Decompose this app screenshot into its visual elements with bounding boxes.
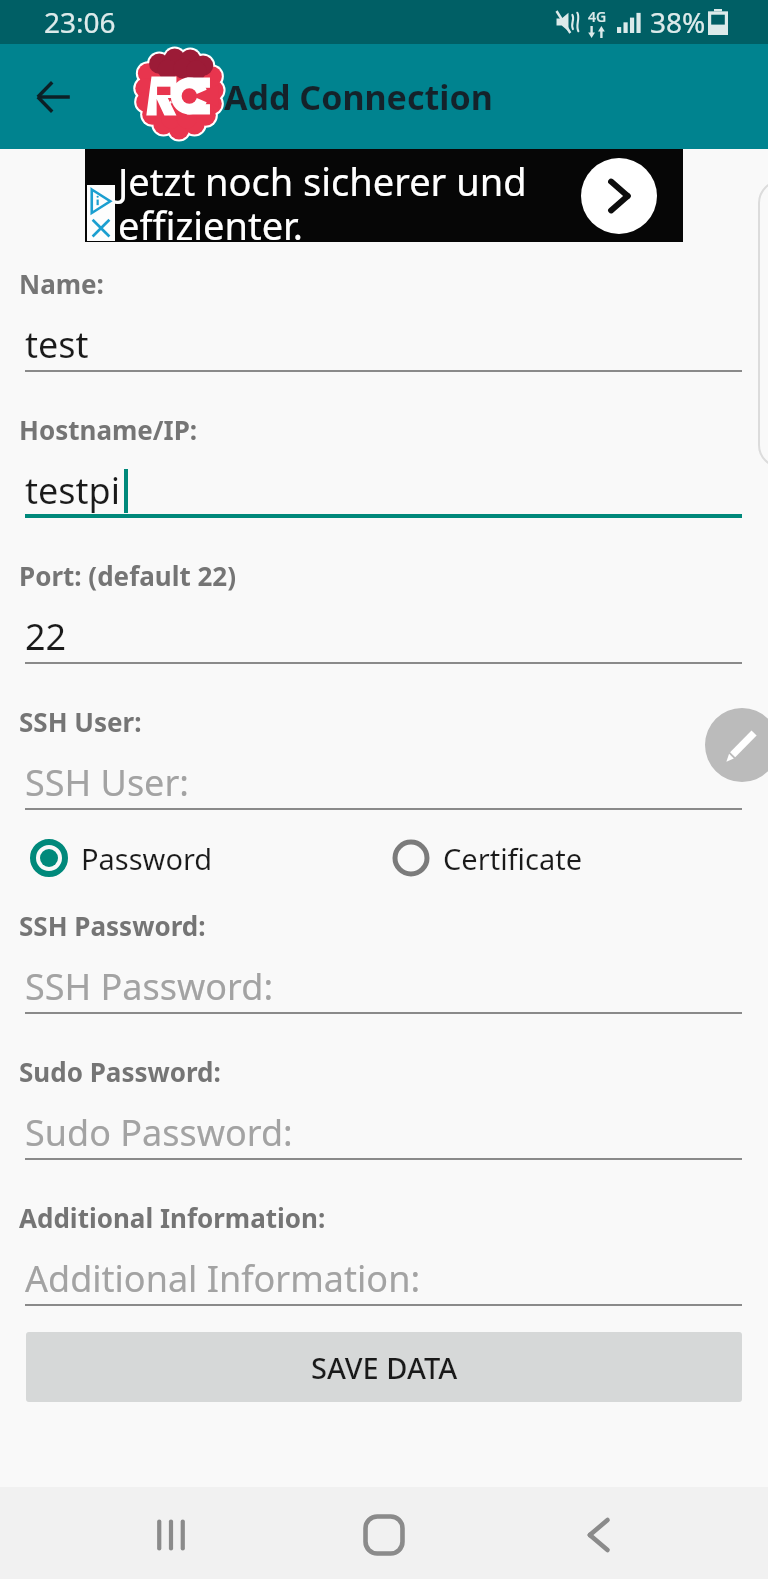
button[interactable]: 22 [25,596,742,664]
staticText: SSH Password: [25,962,274,1011]
button[interactable]: Home [341,1492,427,1578]
staticText: Additional Information: [19,1200,326,1235]
staticText: SAVE DATA [311,1348,458,1387]
staticText: Port: (default 22) [19,558,237,593]
button[interactable]: Edit [705,708,768,782]
staticText: Name: [19,266,104,301]
staticText: Sudo Password: [25,1108,293,1157]
button[interactable]: testpi [25,450,742,518]
staticText: SSH User: [25,758,189,807]
staticText: Add Connection [224,74,493,120]
staticText: Password [81,839,213,878]
button[interactable]: Certificate [391,838,587,878]
staticText: 4G [588,7,607,26]
button[interactable]: Recent apps [128,1492,214,1578]
button[interactable]: Additional Information: [25,1238,742,1306]
button[interactable]: SAVE DATA [26,1332,742,1402]
staticText: Jetzt noch sicherer und [118,155,527,207]
staticText: SSH Password: [19,908,206,943]
button[interactable]: Sudo Password: [25,1092,742,1160]
staticText: Certificate [443,839,583,878]
button[interactable]: Back [555,1492,641,1578]
staticText: Hostname/IP: [19,412,198,447]
button[interactable]: Password [29,838,217,878]
button[interactable]: SSH Password: [25,946,742,1014]
staticText: 22 [25,612,67,661]
button[interactable]: Open advertisement [581,158,657,234]
button[interactable]: Jetzt noch sicherer und [85,149,683,242]
button[interactable]: SSH User: [25,742,742,810]
staticText: 23:06 [44,3,116,41]
button[interactable]: Back [21,65,85,129]
staticText: Additional Information: [25,1254,421,1303]
staticText: Sudo Password: [19,1054,221,1089]
button[interactable]: test [25,304,742,372]
staticText: effizienter. [118,199,303,251]
staticText: 38% [650,3,706,41]
staticText: test [25,320,89,369]
staticText: SSH User: [19,704,142,739]
button[interactable]: Ad choices [87,185,115,241]
staticText: testpi [25,466,120,515]
